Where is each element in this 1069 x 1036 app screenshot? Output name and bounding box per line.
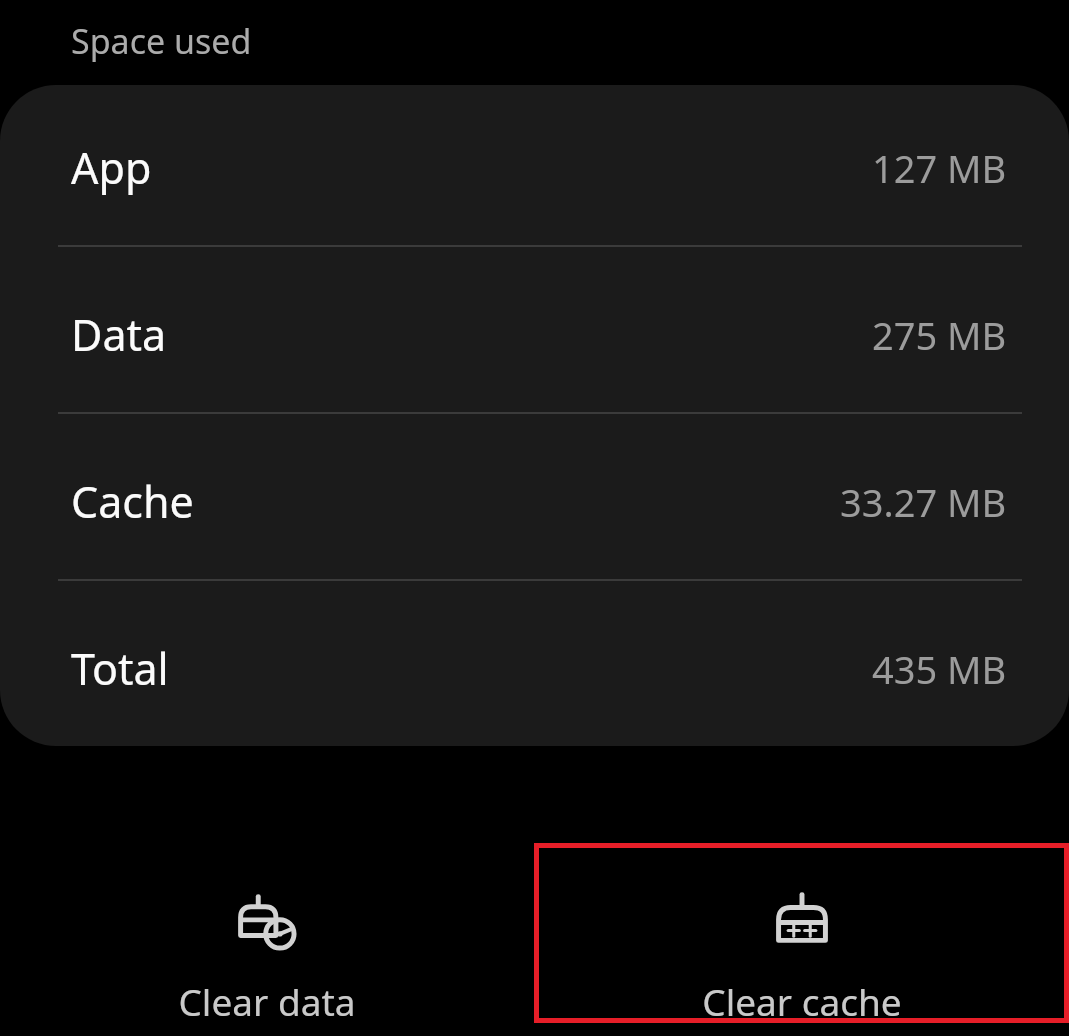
button[interactable]: App xyxy=(0,85,1069,250)
staticText: 435 MB xyxy=(872,643,1007,695)
staticText: 127 MB xyxy=(872,142,1007,194)
staticText: 33.27 MB xyxy=(840,476,1007,528)
staticText: Clear cache xyxy=(702,976,902,1023)
button[interactable]: Total xyxy=(0,586,1069,746)
staticText: Space used xyxy=(71,18,252,64)
staticText: Cache xyxy=(71,472,194,531)
staticText: Data xyxy=(71,305,167,364)
button[interactable]: Clear cache xyxy=(534,843,1069,1023)
button[interactable]: Clear data xyxy=(0,843,534,1023)
staticText: Total xyxy=(71,639,169,698)
staticText: Clear data xyxy=(178,976,356,1023)
staticText: App xyxy=(71,138,152,197)
button[interactable]: Cache xyxy=(0,419,1069,584)
button[interactable]: Data xyxy=(0,252,1069,417)
staticText: 275 MB xyxy=(872,309,1007,361)
